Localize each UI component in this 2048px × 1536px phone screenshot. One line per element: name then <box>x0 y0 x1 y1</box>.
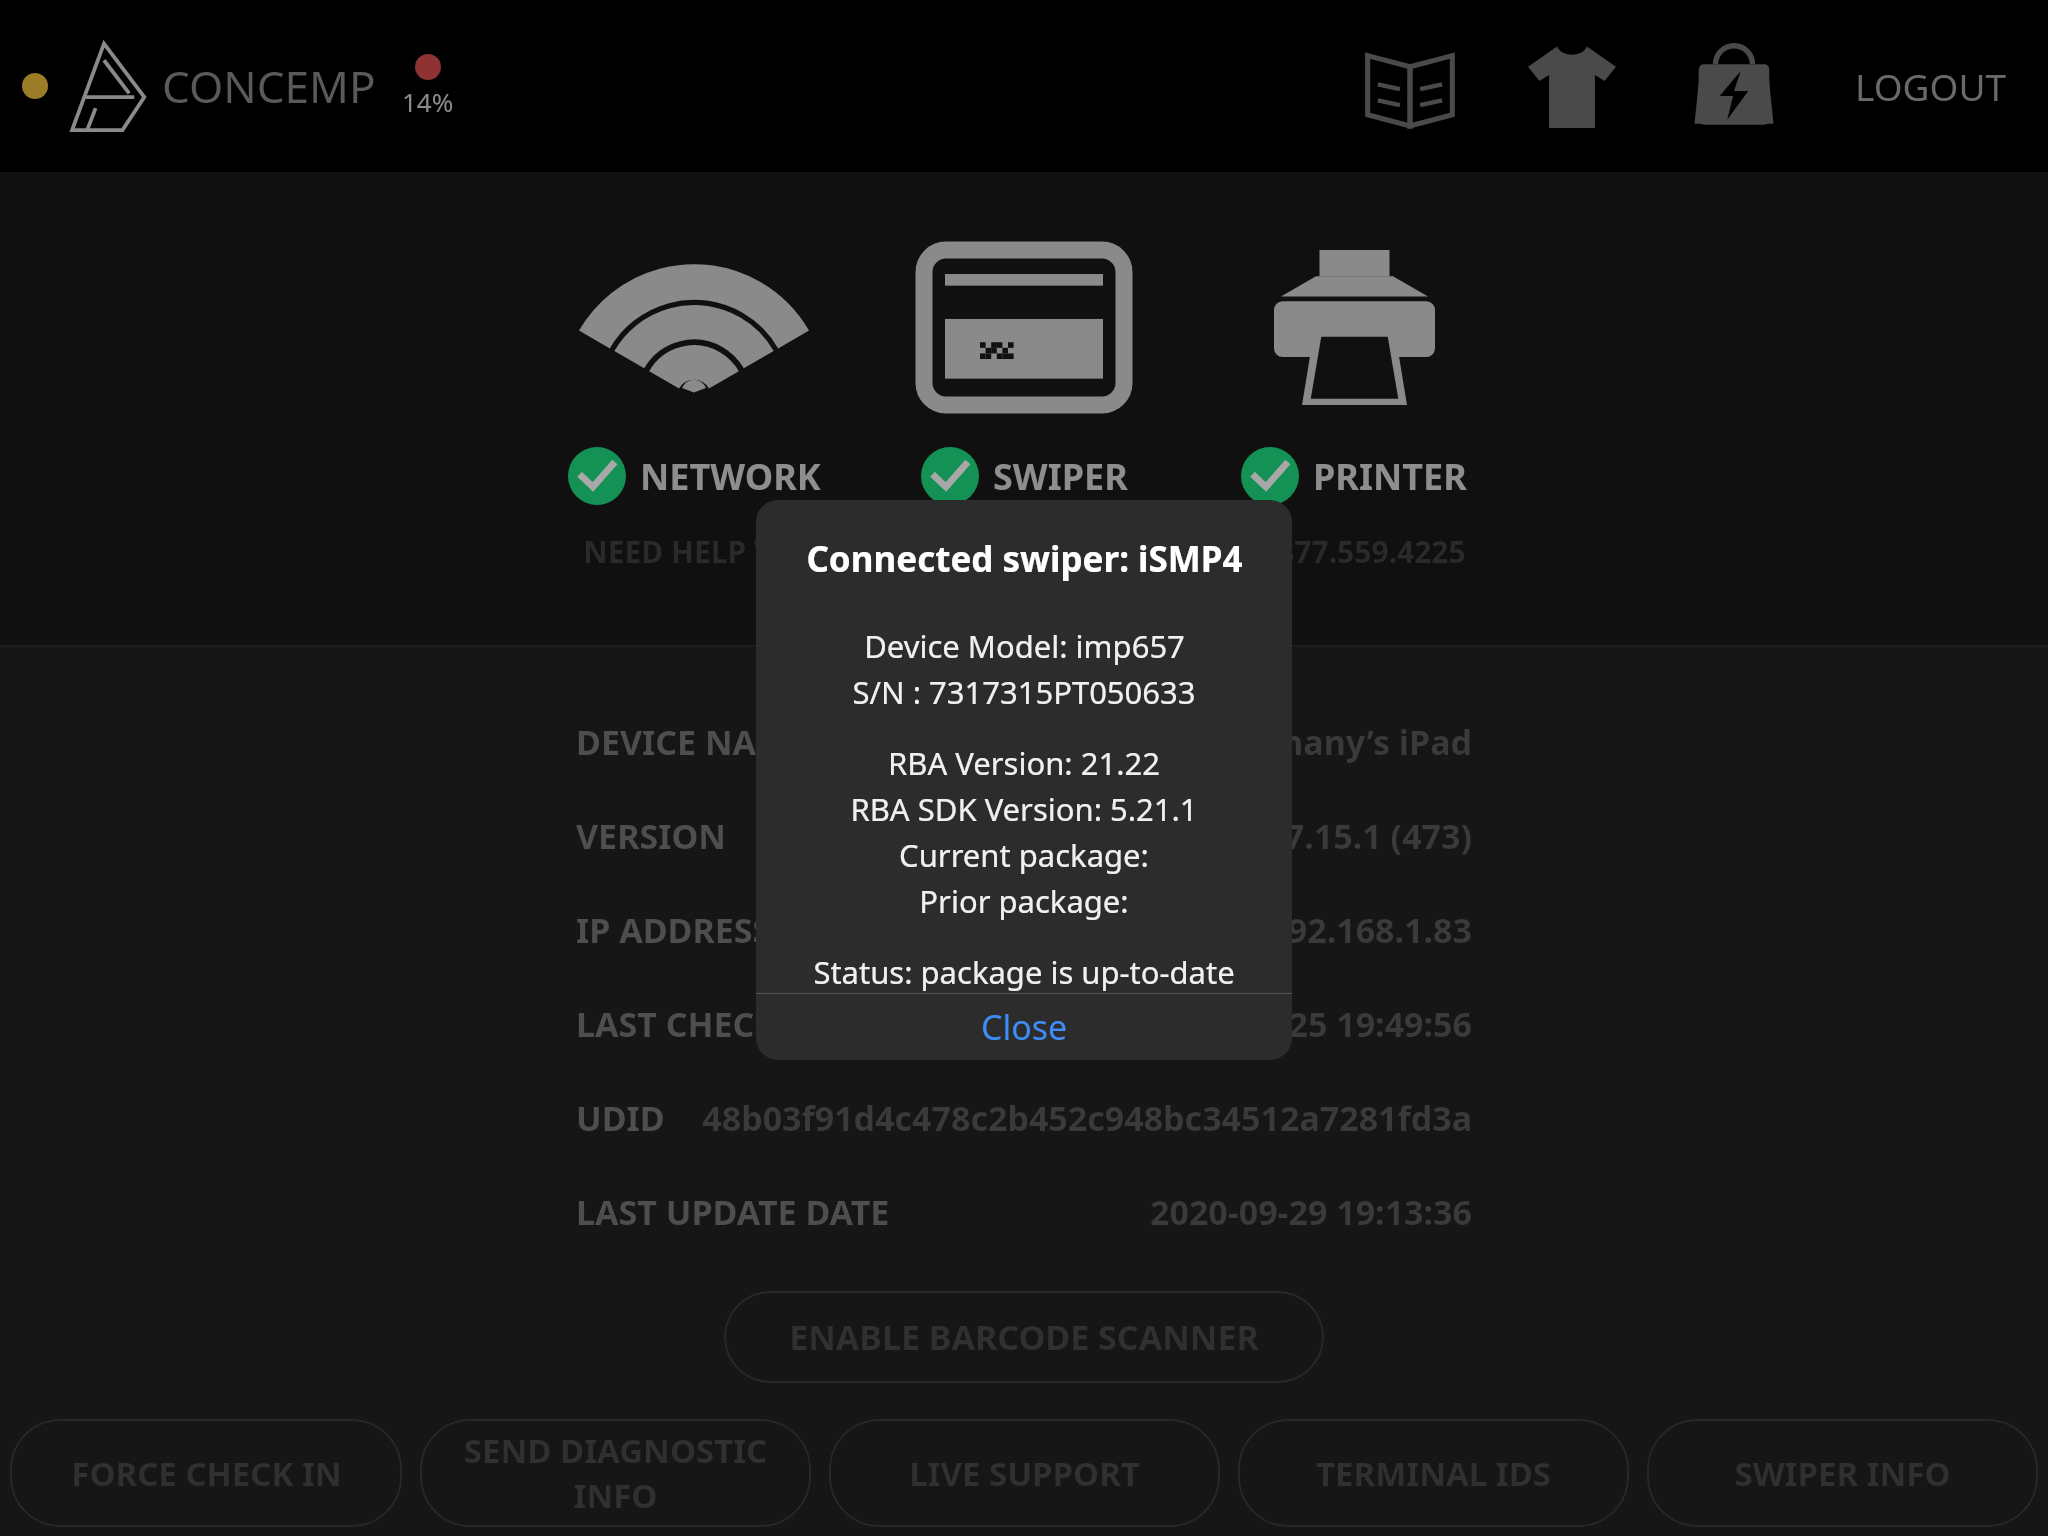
button[interactable]: TERMINAL IDS <box>1238 1419 1629 1527</box>
staticText: FORCE CHECK IN <box>71 1451 342 1496</box>
button[interactable]: LOGOUT <box>1847 47 2014 125</box>
staticText: LAST CHECK IN <box>576 1001 827 1047</box>
staticText: Device Model: imp657 <box>864 625 1185 667</box>
button[interactable]: SWIPER INFO <box>1647 1419 2038 1527</box>
staticText: TERMINAL IDS <box>1316 1451 1551 1496</box>
button[interactable]: FORCE CHECK IN <box>10 1419 402 1527</box>
staticText: NEED HELP WITH YOUR DEVICES? CALL US AT … <box>583 531 1466 572</box>
button[interactable]: LIVE SUPPORT <box>829 1419 1220 1527</box>
staticText: 192.168.1.83 <box>1268 907 1472 953</box>
staticText: UDID <box>576 1095 665 1141</box>
staticText: Current package: <box>899 834 1149 876</box>
staticText: Connected swiper: iSMP4 <box>806 535 1243 583</box>
staticText: Prior package: <box>919 880 1129 922</box>
button[interactable]: Products <box>1517 31 1627 141</box>
staticText: LAST UPDATE DATE <box>576 1189 890 1235</box>
staticText: VERSION <box>576 813 726 859</box>
staticText: SWIPER <box>993 452 1128 501</box>
button[interactable]: LAST CHECK IN <box>0 977 2048 1071</box>
button[interactable]: SWIPER <box>884 447 1164 505</box>
staticText: PRINTER <box>1313 452 1467 501</box>
button[interactable]: Close <box>756 994 1292 1060</box>
staticText: SEND DIAGNOSTIC INFO <box>436 1428 795 1518</box>
staticText: CONCEMP <box>162 56 376 116</box>
button[interactable]: Quick checkout <box>1679 31 1789 141</box>
button[interactable]: DEVICE NAME <box>0 695 2048 789</box>
staticText: DEVICE NAME <box>576 719 808 765</box>
button[interactable]: NETWORK <box>504 447 884 505</box>
button[interactable]: UDID <box>0 1071 2048 1165</box>
staticText: 14% <box>402 84 454 119</box>
staticText: 2020-09-29 19:13:36 <box>1150 1189 1472 1235</box>
staticText: LOGOUT <box>1855 61 2006 111</box>
button[interactable]: LAST UPDATE DATE <box>0 1165 2048 1259</box>
staticText: 48b03f91d4c478c2b452c948bc34512a7281fd3a <box>702 1095 1472 1141</box>
button[interactable]: IP ADDRESS <box>0 883 2048 977</box>
staticText: Close <box>981 1004 1068 1050</box>
staticText: IP ADDRESS <box>576 907 772 953</box>
staticText: 2020-11-25 19:49:56 <box>1150 1001 1472 1047</box>
button[interactable]: VERSION <box>0 789 2048 883</box>
staticText: LIVE SUPPORT <box>909 1451 1140 1496</box>
button[interactable]: ENABLE BARCODE SCANNER <box>724 1291 1324 1383</box>
staticText: S/N : 7317315PT050633 <box>852 671 1196 713</box>
staticText: 7.15.1 (473) <box>1284 813 1472 859</box>
staticText: RBA SDK Version: 5.21.1 <box>850 788 1198 830</box>
button[interactable]: SEND DIAGNOSTIC INFO <box>420 1419 811 1527</box>
button[interactable]: Catalog <box>1355 31 1465 141</box>
staticText: Status: package is up-to-date <box>813 951 1235 993</box>
staticText: Bethany’s iPad <box>1223 719 1472 765</box>
staticText: SWIPER INFO <box>1734 1451 1951 1496</box>
staticText: ENABLE BARCODE SCANNER <box>789 1314 1259 1360</box>
button[interactable]: PRINTER <box>1164 447 1544 505</box>
staticText: NETWORK <box>640 452 821 501</box>
staticText: RBA Version: 21.22 <box>888 742 1160 784</box>
